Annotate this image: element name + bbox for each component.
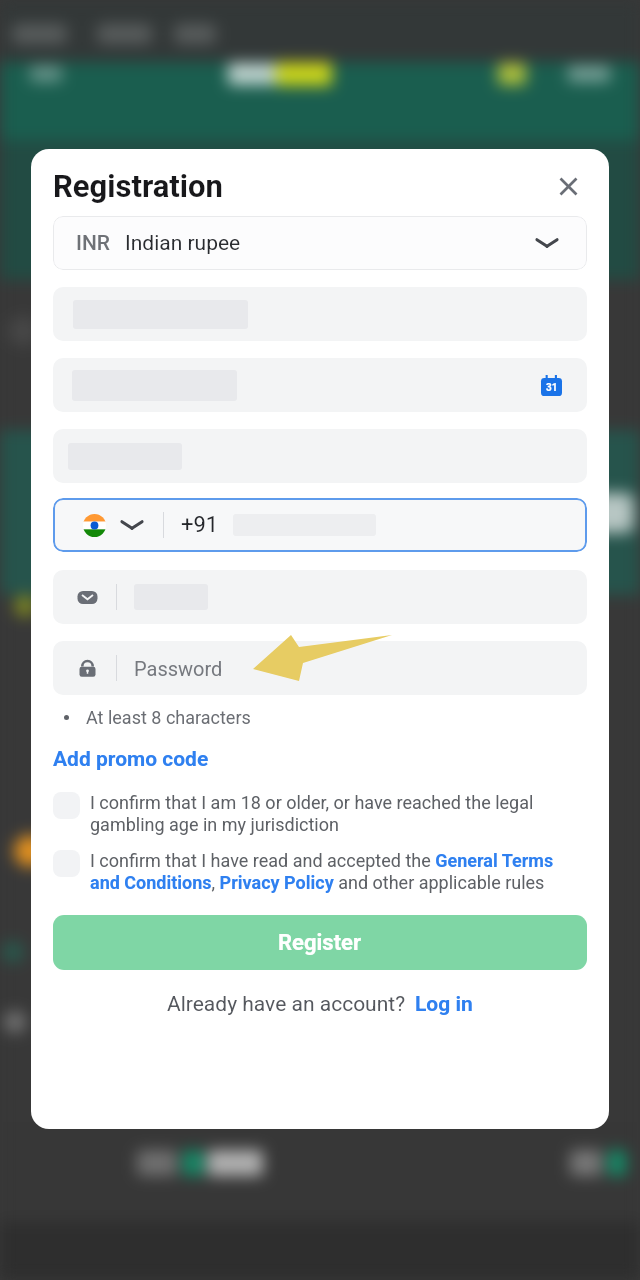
staticText: Already have an account? bbox=[167, 992, 406, 1017]
button[interactable]: Log in bbox=[415, 992, 473, 1017]
staticText: +91 bbox=[181, 512, 219, 538]
button[interactable]: I confirm that I have read and accepted … bbox=[53, 850, 587, 894]
staticText: I confirm that I have read and accepted … bbox=[90, 850, 560, 894]
button[interactable]: INR bbox=[53, 216, 587, 270]
button[interactable]: +91 bbox=[53, 498, 587, 552]
button[interactable]: Password bbox=[53, 641, 587, 695]
button[interactable]: Add promo code bbox=[53, 746, 209, 772]
staticText: At least 8 characters bbox=[86, 707, 251, 728]
staticText: Registration bbox=[53, 168, 223, 204]
staticText: Log in bbox=[415, 992, 473, 1017]
staticText: Password bbox=[134, 657, 223, 680]
staticText: 31 bbox=[546, 382, 558, 394]
staticText: INR bbox=[76, 231, 111, 256]
button[interactable] bbox=[53, 570, 587, 624]
button[interactable]: I confirm that I am 18 or older, or have… bbox=[53, 792, 587, 836]
button[interactable]: 31 bbox=[53, 358, 587, 412]
staticText: Indian rupee bbox=[125, 231, 241, 256]
button[interactable] bbox=[53, 429, 587, 483]
staticText: I confirm that I am 18 or older, or have… bbox=[90, 792, 560, 836]
button[interactable]: Close bbox=[549, 167, 587, 205]
staticText: Add promo code bbox=[53, 747, 209, 772]
button[interactable]: Register bbox=[53, 915, 587, 970]
button[interactable] bbox=[53, 287, 587, 341]
staticText: Register bbox=[278, 930, 362, 956]
